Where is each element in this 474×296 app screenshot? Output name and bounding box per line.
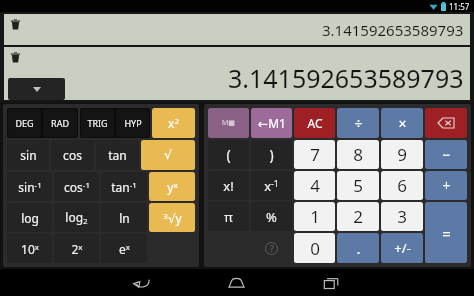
staticText: ←M1 bbox=[258, 115, 286, 131]
button[interactable]: 7 bbox=[294, 140, 335, 169]
staticText: 7 bbox=[310, 143, 320, 166]
staticText: +/- bbox=[394, 239, 411, 257]
button[interactable]: x-1 bbox=[251, 171, 292, 200]
staticText: log bbox=[21, 210, 39, 226]
staticText: √ bbox=[164, 148, 172, 162]
button[interactable]: Square root bbox=[141, 140, 195, 170]
button[interactable]: sin-1 bbox=[7, 172, 52, 201]
staticText: 3 bbox=[397, 205, 407, 228]
staticText: ex bbox=[119, 241, 130, 257]
staticText: − bbox=[442, 145, 451, 164]
button[interactable]: DEG bbox=[8, 109, 41, 137]
staticText: x! bbox=[223, 177, 234, 195]
staticText: 8 bbox=[353, 143, 363, 166]
button[interactable]: π bbox=[208, 202, 249, 231]
button[interactable]: Back bbox=[94, 269, 189, 296]
button[interactable]: Change sign bbox=[381, 233, 423, 263]
button[interactable]: Home bbox=[189, 269, 284, 296]
staticText: 2x bbox=[71, 241, 83, 257]
button[interactable]: Memory bbox=[208, 108, 249, 138]
button[interactable]: ex bbox=[101, 234, 147, 263]
staticText: ? bbox=[270, 242, 274, 254]
staticText: sin bbox=[20, 147, 37, 163]
button[interactable]: 3 bbox=[381, 202, 423, 231]
button[interactable]: Recent apps bbox=[284, 269, 379, 296]
staticText: 4 bbox=[310, 174, 320, 197]
button[interactable]: Minus bbox=[425, 140, 467, 169]
staticText: x2 bbox=[168, 115, 179, 131]
staticText: 3.141592653589793 bbox=[322, 20, 464, 40]
button[interactable]: cos bbox=[51, 140, 94, 170]
staticText: cos-1 bbox=[64, 179, 90, 195]
staticText: 10x bbox=[21, 241, 39, 257]
button[interactable]: 5 bbox=[337, 171, 379, 200]
button[interactable]: 4 bbox=[294, 171, 335, 200]
staticText: 11:57 bbox=[449, 1, 470, 12]
button[interactable]: AC bbox=[294, 108, 335, 138]
button[interactable]: Backspace bbox=[425, 108, 467, 138]
button[interactable]: Multiply bbox=[381, 108, 423, 138]
button[interactable]: Help bbox=[251, 233, 292, 263]
button[interactable]: 6 bbox=[381, 171, 423, 200]
staticText: 6 bbox=[397, 174, 407, 197]
staticText: 9 bbox=[397, 143, 407, 166]
button[interactable]: ) bbox=[251, 140, 292, 169]
button[interactable]: ←M1 bbox=[251, 108, 292, 138]
button[interactable]: ( bbox=[208, 140, 249, 169]
button[interactable]: % bbox=[251, 202, 292, 231]
button[interactable]: RAD bbox=[43, 109, 77, 137]
staticText: AC bbox=[307, 115, 323, 131]
staticText: x-1 bbox=[264, 177, 279, 195]
button[interactable]: 2 bbox=[337, 202, 379, 231]
button[interactable]: 8 bbox=[337, 140, 379, 169]
button[interactable]: 0 bbox=[294, 233, 335, 263]
button[interactable]: 3.141592653589793 bbox=[4, 14, 470, 45]
button[interactable]: Decimal point bbox=[337, 233, 379, 263]
staticText: 2 bbox=[353, 205, 363, 228]
staticText: × bbox=[398, 114, 407, 133]
staticText: 0 bbox=[310, 237, 320, 260]
button[interactable]: HYP bbox=[116, 109, 149, 137]
staticText: RAD bbox=[51, 117, 69, 129]
staticText: yx bbox=[167, 179, 178, 195]
button[interactable]: TRIG bbox=[81, 109, 114, 137]
button[interactable]: tan-1 bbox=[101, 172, 147, 201]
staticText: 3√y bbox=[163, 210, 182, 226]
staticText: HYP bbox=[124, 117, 142, 129]
button[interactable]: 2x bbox=[54, 234, 99, 263]
button[interactable]: yx bbox=[149, 172, 195, 201]
button[interactable]: Equals bbox=[425, 202, 467, 263]
staticText: = bbox=[442, 223, 451, 243]
button[interactable]: Divide bbox=[337, 108, 379, 138]
button[interactable]: x2 bbox=[152, 108, 195, 138]
button[interactable]: 3.141592653589793 bbox=[4, 47, 470, 100]
staticText: cos bbox=[63, 147, 82, 163]
staticText: π bbox=[224, 208, 233, 226]
button[interactable]: 9 bbox=[381, 140, 423, 169]
button[interactable]: 10x bbox=[7, 234, 52, 263]
staticText: tan-1 bbox=[111, 179, 137, 195]
staticText: TRIG bbox=[87, 117, 108, 129]
staticText: log2 bbox=[65, 209, 88, 227]
staticText: % bbox=[266, 208, 277, 226]
button[interactable]: Plus bbox=[425, 171, 467, 200]
button[interactable]: 1 bbox=[294, 202, 335, 231]
staticText: 5 bbox=[353, 174, 363, 197]
button[interactable]: ln bbox=[101, 203, 147, 232]
staticText: ( bbox=[226, 145, 231, 164]
button[interactable]: x! bbox=[208, 171, 249, 200]
staticText: ln bbox=[119, 210, 130, 226]
staticText: ) bbox=[269, 145, 274, 164]
button[interactable]: tan bbox=[96, 140, 139, 170]
staticText: 3.141592653589793 bbox=[228, 61, 464, 95]
staticText: DEG bbox=[15, 117, 34, 129]
staticText: ÷ bbox=[354, 114, 363, 133]
button[interactable]: cos-1 bbox=[54, 172, 99, 201]
button[interactable]: log bbox=[7, 203, 52, 232]
button[interactable]: log2 bbox=[54, 203, 99, 232]
button[interactable]: Show history bbox=[8, 78, 65, 100]
button[interactable]: sin bbox=[7, 140, 49, 170]
staticText: tan bbox=[108, 147, 127, 163]
staticText: + bbox=[442, 176, 451, 195]
button[interactable]: 3√y bbox=[149, 203, 195, 232]
